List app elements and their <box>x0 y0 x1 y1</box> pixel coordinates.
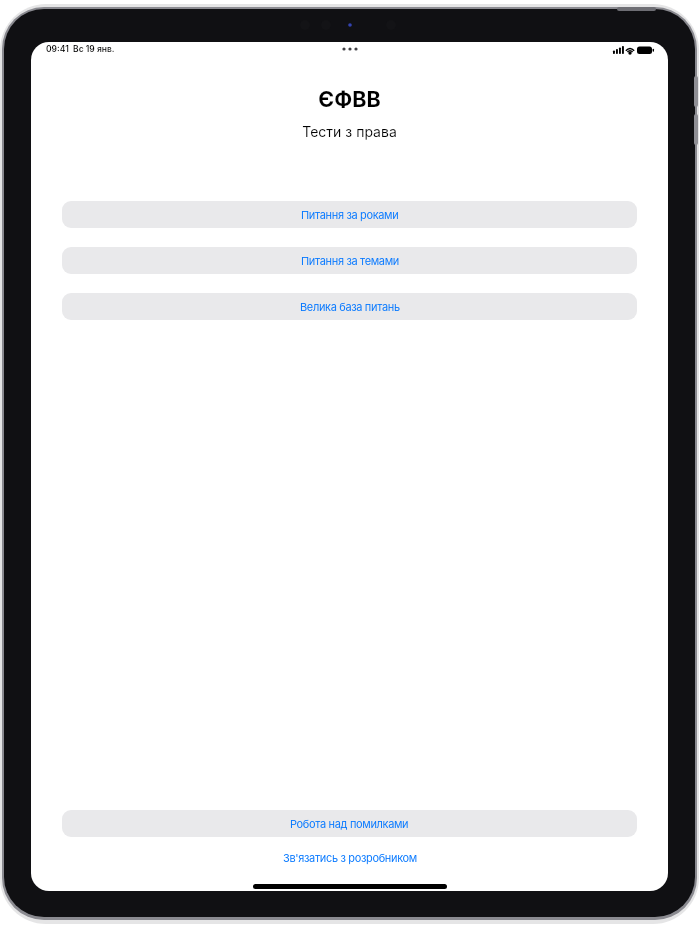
staticText: Зв'язатись з розробником <box>283 851 417 864</box>
button[interactable]: Велика база питань <box>62 293 637 320</box>
staticText: Робота над помилками <box>290 817 409 830</box>
staticText: Питання за роками <box>301 208 399 221</box>
button[interactable]: Питання за темами <box>62 247 637 274</box>
staticText: 09:41 Вс 19 янв. <box>46 44 115 54</box>
staticText: Велика база питань <box>300 300 400 313</box>
staticText: Тести з права <box>31 123 668 140</box>
staticText: ЄФВВ <box>31 86 668 112</box>
button[interactable]: Робота над помилками <box>62 810 637 837</box>
button[interactable]: Зв'язатись з розробником <box>283 851 417 864</box>
staticText: Питання за темами <box>301 254 399 267</box>
button[interactable]: Питання за роками <box>62 201 637 228</box>
